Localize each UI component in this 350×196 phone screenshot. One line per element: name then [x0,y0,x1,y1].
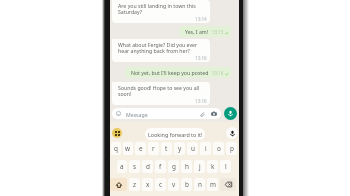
staticText: u [191,144,195,153]
button[interactable]: y [174,142,185,155]
button[interactable]: Attach [199,111,205,117]
staticText: q [114,144,118,153]
staticText: n [198,180,202,189]
button[interactable]: Looking forward to it! [145,128,205,140]
staticText: t [165,144,168,153]
button[interactable]: o [213,142,224,155]
button[interactable]: u [187,142,198,155]
staticText: Not yet, but I'll keep you posted [131,69,209,76]
button[interactable]: h [181,160,192,173]
staticText: 13:16 [195,98,207,104]
button[interactable]: j [194,160,205,173]
button[interactable]: a [117,160,127,173]
staticText: m [210,180,216,189]
staticText: a [120,162,124,171]
staticText: d [146,162,150,171]
staticText: 13:16 [212,70,224,76]
button[interactable]: Voice message [224,107,237,120]
staticText: 13:14 [195,16,207,22]
staticText: g [172,162,176,171]
staticText: h [185,162,189,171]
staticText: Yes, I am! [185,28,209,35]
button[interactable]: i [200,142,211,155]
button[interactable]: k [207,160,218,173]
staticText: r [152,144,155,153]
button[interactable]: p [226,142,237,155]
button[interactable]: g [168,160,179,173]
button[interactable]: r [148,142,159,155]
staticText: j [199,162,201,171]
button[interactable]: Sounds good! Hope to see you all soon! [112,82,210,105]
staticText: y [178,144,182,153]
button[interactable]: Camera [211,111,217,117]
button[interactable]: m [207,178,218,191]
button[interactable]: n [194,178,205,191]
button[interactable]: c [155,178,166,191]
staticText: b [185,180,189,189]
staticText: Message [126,111,148,118]
button[interactable]: Shift [110,178,127,191]
staticText: 13:15 [212,29,224,35]
button[interactable]: f [155,160,166,173]
staticText: 13:16 [195,55,207,61]
button[interactable]: t [161,142,172,155]
staticText: p [230,144,234,153]
button[interactable]: What about Fergie? Did you ever hear any… [112,39,210,62]
button[interactable]: s [129,160,140,173]
staticText: z [133,180,137,189]
button[interactable]: w [123,142,133,155]
button[interactable]: d [142,160,153,173]
button[interactable]: Not yet, but I'll keep you posted [125,67,231,78]
staticText: c [159,180,163,189]
staticText: Looking forward to it! [148,131,203,138]
staticText: k [211,162,215,171]
staticText: x [146,180,150,189]
button[interactable]: b [181,178,192,191]
button[interactable]: Are you still landing in town this Satur… [112,0,210,23]
staticText: What about Fergie? Did you ever hear any… [118,41,207,55]
button[interactable]: Message [112,108,221,119]
staticText: o [217,144,221,153]
staticText: e [139,144,143,153]
button[interactable]: Yes, I am! [179,26,231,37]
staticText: v [172,180,176,189]
button[interactable]: v [168,178,179,191]
button[interactable]: z [129,178,140,191]
staticText: i [205,144,207,153]
staticText: l [225,162,227,171]
button[interactable]: q [111,142,121,155]
button[interactable]: Voice input [226,127,238,139]
staticText: f [159,162,162,171]
button[interactable]: e [135,142,146,155]
staticText: Are you still landing in town this Satur… [118,2,207,16]
staticText: s [133,162,137,171]
staticText: w [125,144,131,153]
button[interactable]: Keyboard options [112,128,122,138]
button[interactable]: Backspace [220,178,236,191]
button[interactable]: l [220,160,231,173]
staticText: Sounds good! Hope to see you all soon! [118,84,207,98]
button[interactable]: x [142,178,153,191]
